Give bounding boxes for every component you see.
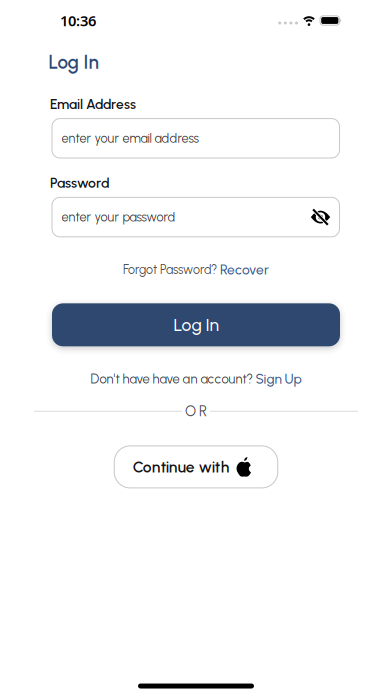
staticText: enter your password: [61, 209, 175, 225]
button[interactable]: Show password: [310, 209, 330, 226]
staticText: O R: [185, 403, 207, 420]
staticText: 10:36: [60, 11, 96, 30]
staticText: Log In: [48, 51, 98, 74]
button[interactable]: Sign Up: [255, 371, 301, 387]
button[interactable]: Continue with: [114, 446, 278, 488]
staticText: Don't have have an account?: [90, 371, 255, 387]
staticText: Recover: [220, 261, 269, 278]
button[interactable]: Log In: [52, 303, 340, 346]
staticText: Forgot Password?: [123, 262, 220, 277]
staticText: Continue with: [133, 458, 230, 476]
staticText: Password: [50, 174, 110, 191]
staticText: enter your email address: [61, 131, 198, 146]
staticText: Sign Up: [255, 371, 301, 387]
staticText: Log In: [173, 314, 218, 335]
staticText: Email Address: [50, 96, 136, 113]
button[interactable]: Recover: [220, 261, 269, 278]
